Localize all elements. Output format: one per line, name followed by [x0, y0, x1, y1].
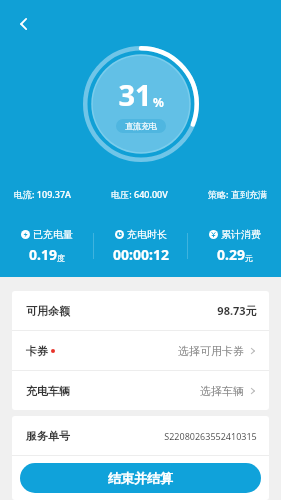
staticText: 服务单号	[26, 429, 70, 443]
staticText: 直流充电	[125, 121, 157, 131]
staticText: 结束并结算	[108, 470, 173, 486]
staticText: 卡券	[26, 344, 48, 358]
staticText: 选择可用卡券	[178, 344, 244, 358]
staticText: %	[153, 94, 164, 110]
staticText: S22080263552410315	[164, 430, 257, 442]
staticText: 电压: 640.00V	[111, 188, 168, 200]
staticText: 已充电量	[33, 228, 73, 241]
button[interactable]: 卡券	[12, 331, 269, 370]
staticText: 00:00:12	[113, 245, 169, 264]
staticText: 0.29	[217, 245, 245, 264]
staticText: 选择车辆	[200, 384, 244, 398]
staticText: 0.19	[29, 245, 57, 264]
staticText: 31	[118, 75, 152, 114]
staticText: 充电车辆	[26, 384, 70, 398]
staticText: 策略: 直到充满	[208, 188, 267, 200]
staticText: 电流: 109.37A	[14, 188, 71, 200]
button[interactable]: 结束并结算	[20, 463, 261, 493]
staticText: 度	[57, 253, 65, 263]
button[interactable]: 充电车辆	[12, 371, 269, 410]
button[interactable]: 可用余额	[12, 291, 269, 330]
staticText: 可用余额	[26, 304, 70, 318]
staticText: 98.73元	[217, 303, 257, 318]
staticText: 累计消费	[221, 228, 261, 241]
staticText: 充电时长	[127, 228, 167, 241]
button[interactable]: Back	[4, 4, 44, 44]
staticText: 元	[245, 253, 253, 263]
button[interactable]: 服务单号	[12, 416, 269, 455]
